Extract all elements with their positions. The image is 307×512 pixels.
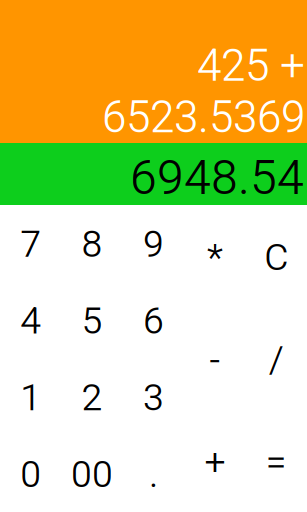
button[interactable]: Subtract: [184, 307, 246, 410]
staticText: 7: [20, 222, 41, 266]
button[interactable]: Divide: [246, 307, 307, 410]
button[interactable]: Add: [184, 410, 246, 512]
button[interactable]: 5: [61, 282, 123, 359]
button[interactable]: 9: [123, 205, 184, 282]
button[interactable]: Equals: [246, 410, 307, 512]
staticText: 425 +: [197, 40, 305, 91]
staticText: 9: [143, 222, 164, 266]
staticText: 00: [71, 452, 113, 496]
staticText: =: [266, 440, 287, 484]
button[interactable]: Clear: [246, 205, 307, 307]
button[interactable]: 00: [61, 435, 123, 512]
staticText: 1: [20, 375, 41, 419]
staticText: 6948.54: [130, 149, 304, 206]
button[interactable]: 8: [61, 205, 123, 282]
button[interactable]: 4: [0, 282, 61, 359]
button[interactable]: 2: [61, 358, 123, 435]
staticText: 6523.5369: [102, 91, 305, 143]
button[interactable]: 1: [0, 358, 61, 435]
staticText: C: [264, 235, 288, 279]
staticText: -: [209, 338, 220, 381]
button[interactable]: Multiply: [184, 205, 246, 307]
staticText: 4: [20, 299, 41, 342]
button[interactable]: 7: [0, 205, 61, 282]
staticText: .: [149, 452, 158, 496]
staticText: 2: [82, 375, 103, 419]
button[interactable]: 0: [0, 435, 61, 512]
staticText: 6: [143, 299, 164, 342]
staticText: 5: [82, 299, 103, 342]
staticText: /: [269, 338, 284, 381]
button[interactable]: 6: [123, 282, 184, 359]
staticText: +: [204, 440, 225, 484]
staticText: 3: [143, 375, 164, 419]
staticText: *: [207, 235, 223, 279]
staticText: 8: [82, 222, 103, 266]
button[interactable]: 3: [123, 358, 184, 435]
button[interactable]: Decimal point: [123, 435, 184, 512]
staticText: 0: [20, 452, 41, 496]
